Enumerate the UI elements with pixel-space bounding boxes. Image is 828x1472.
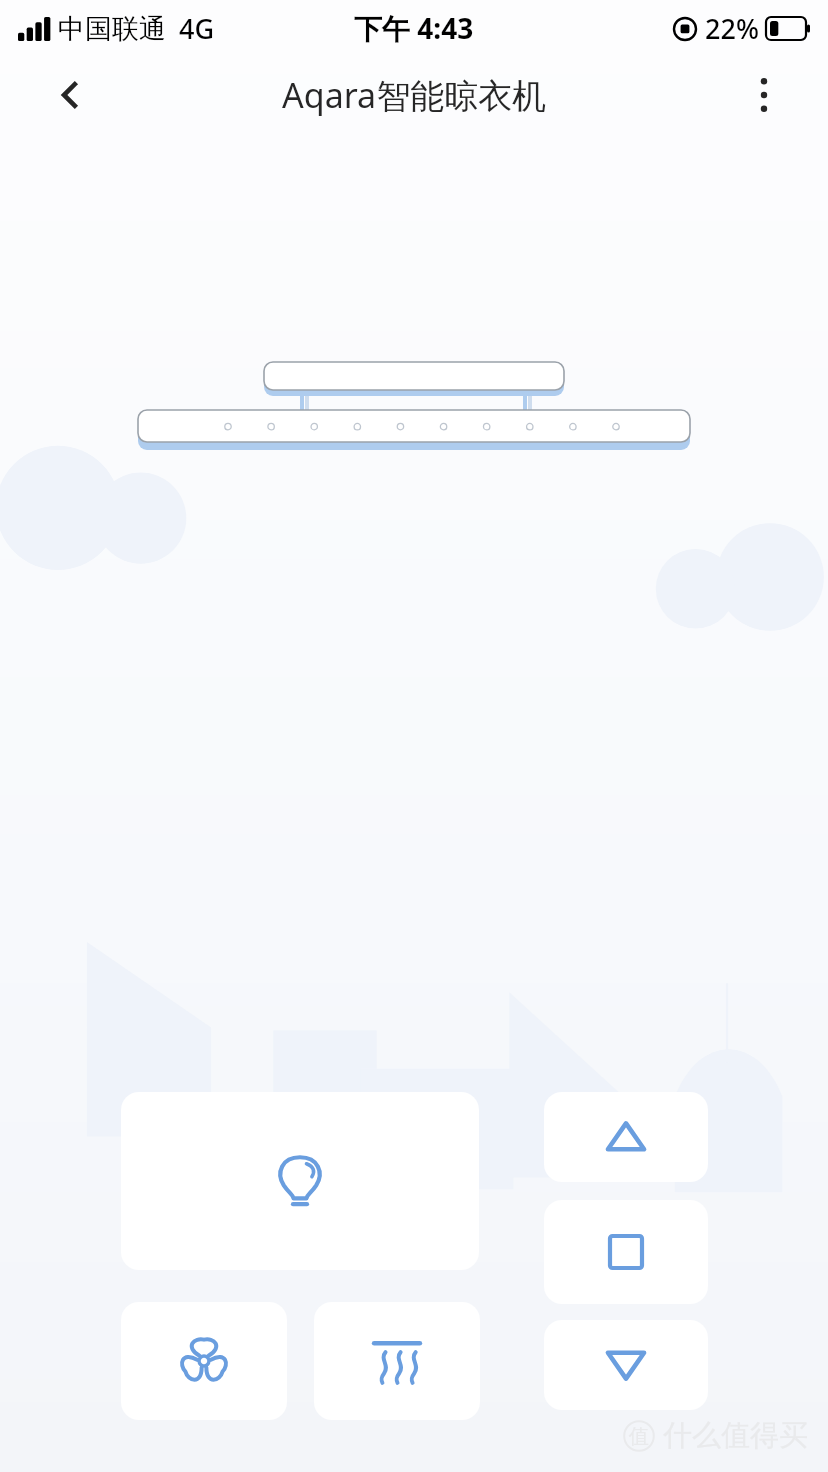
- staticText: 22%: [705, 10, 759, 47]
- staticText: 中国联通: [58, 12, 166, 46]
- button[interactable]: Lower: [544, 1320, 708, 1410]
- button[interactable]: Fan: [121, 1302, 287, 1420]
- button[interactable]: Dry: [314, 1302, 480, 1420]
- staticText: Aqara智能晾衣机: [282, 72, 547, 118]
- button[interactable]: Back: [40, 65, 100, 125]
- button[interactable]: Raise: [544, 1092, 708, 1182]
- staticText: 4G: [179, 10, 215, 47]
- button[interactable]: Light: [121, 1092, 479, 1270]
- button[interactable]: Stop: [544, 1200, 708, 1304]
- staticText: 值: [629, 1424, 649, 1449]
- button[interactable]: More options: [734, 65, 794, 125]
- staticText: 下午 4:43: [354, 9, 474, 47]
- staticText: 什么值得买: [663, 1417, 808, 1454]
